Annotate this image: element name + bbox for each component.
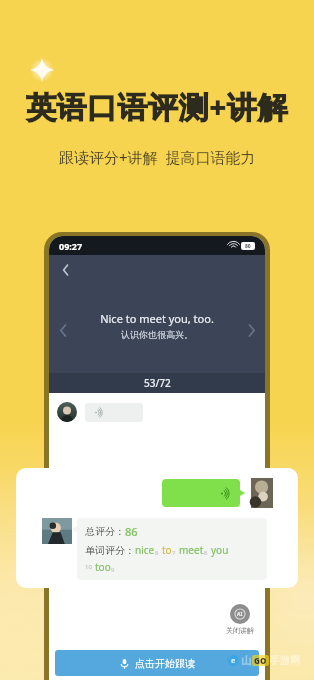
staticText: 9: [111, 566, 115, 574]
button[interactable]: Play my recording: [162, 478, 273, 508]
staticText: 7: [172, 549, 176, 557]
staticText: 山: [241, 654, 251, 667]
staticText: 关闭讲解: [226, 626, 254, 635]
button[interactable]: Play audio: [57, 402, 143, 422]
staticText: AI: [237, 611, 243, 618]
button[interactable]: Previous: [53, 320, 73, 340]
staticText: 53/72: [144, 376, 171, 390]
staticText: to: [162, 543, 172, 557]
staticText: 英语口语评测+讲解: [26, 86, 289, 127]
staticText: meet: [179, 543, 204, 557]
staticText: nice: [135, 543, 155, 557]
staticText: Nice to meet you, too.: [100, 311, 214, 326]
button[interactable]: Next: [241, 320, 261, 340]
staticText: you: [211, 543, 229, 557]
staticText: too: [95, 560, 111, 574]
staticText: GO: [254, 655, 267, 666]
staticText: 80: [245, 243, 251, 250]
staticText: 86: [125, 524, 138, 539]
staticText: 手游网: [270, 654, 300, 667]
staticText: 总评分：: [85, 525, 125, 538]
button[interactable]: Back: [55, 259, 77, 281]
staticText: 10: [85, 563, 92, 571]
staticText: 单词评分：: [85, 544, 135, 557]
button[interactable]: 点击开始跟读: [55, 650, 259, 676]
staticText: 8: [204, 549, 208, 557]
staticText: 8: [155, 549, 159, 557]
button[interactable]: 关闭讲解: [226, 604, 254, 635]
staticText: 认识你也很高兴。: [121, 329, 193, 340]
staticText: e: [231, 656, 236, 666]
staticText: 09:27: [59, 240, 83, 252]
staticText: 跟读评分+讲解 提高口语能力: [59, 147, 256, 167]
staticText: 点击开始跟读: [135, 657, 195, 670]
